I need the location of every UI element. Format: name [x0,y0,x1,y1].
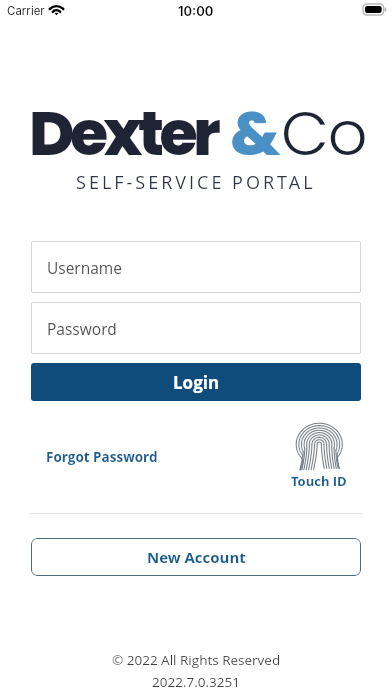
staticText: 10:00 [178,3,214,19]
button[interactable]: Password [31,302,361,354]
button[interactable]: Forgot Password [46,442,158,472]
staticText: Carrier [7,4,45,18]
staticText: Login [173,371,220,394]
staticText: & [230,90,281,177]
staticText: Co [281,90,367,177]
staticText: New Account [147,547,246,567]
staticText: 2022.7.0.3251 [152,673,240,691]
button[interactable]: Login [31,363,361,401]
button[interactable]: New Account [31,538,361,576]
staticText: Username [47,257,122,278]
staticText: Password [47,318,117,339]
staticText: © 2022 All Rights Reserved [112,651,281,669]
staticText: Touch ID [291,472,347,490]
staticText: Forgot Password [46,448,158,466]
button[interactable]: Username [31,241,361,293]
button[interactable]: Touch ID [291,423,347,490]
staticText: SELF-SERVICE PORTAL [76,170,316,195]
staticText: Dexter [29,90,217,177]
